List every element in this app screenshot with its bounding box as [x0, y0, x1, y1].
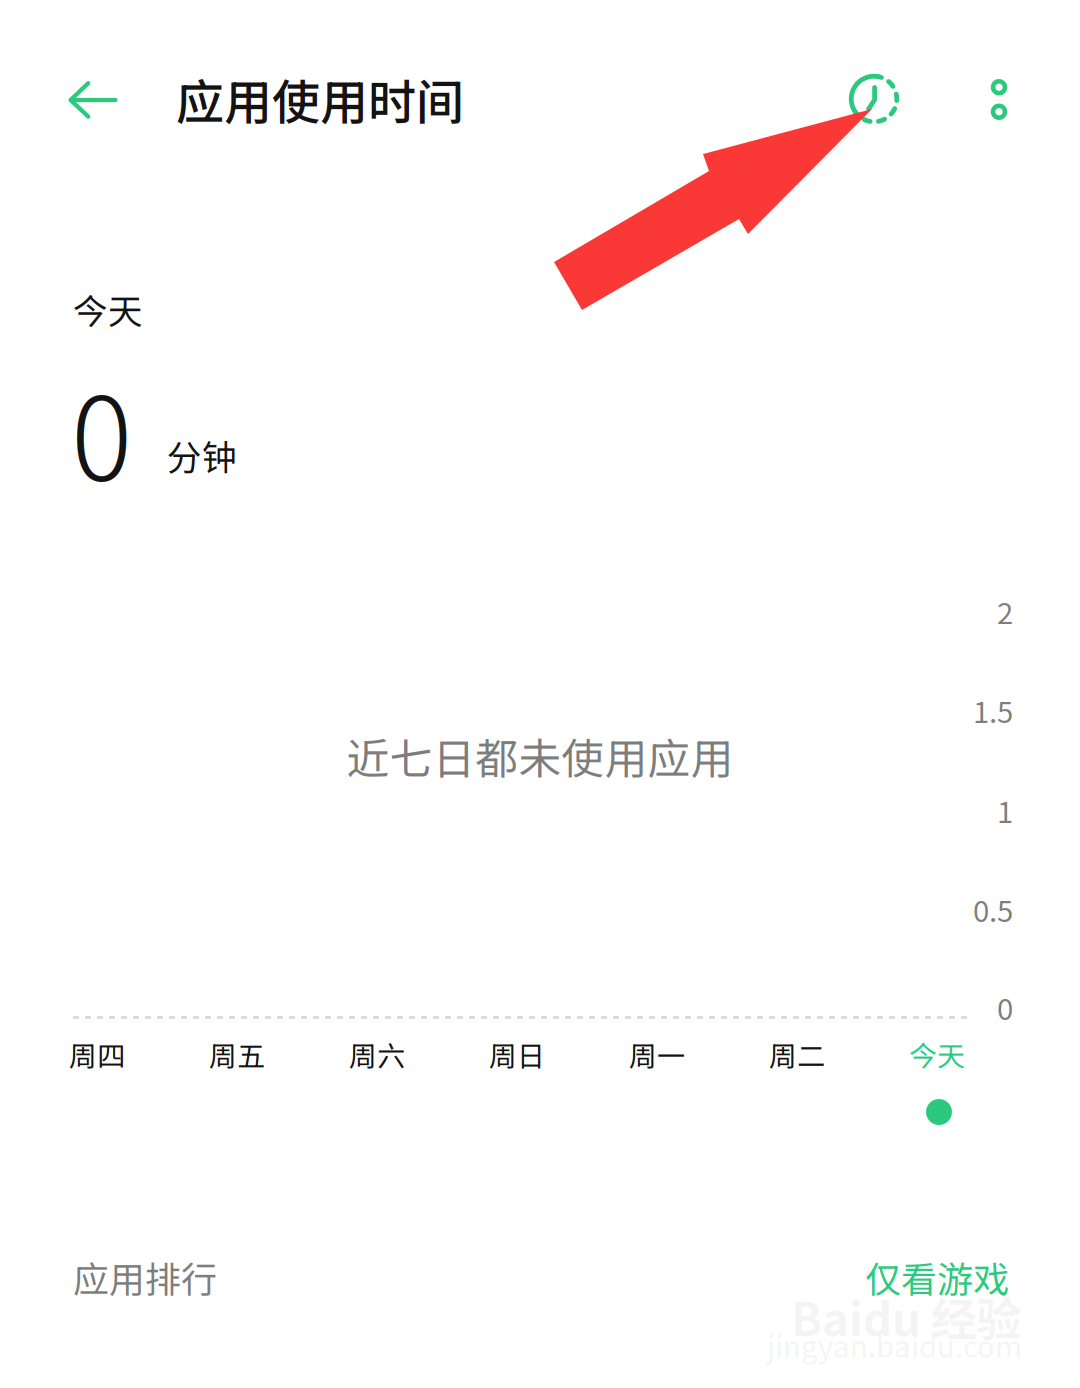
- staticText: 0.5: [973, 888, 1013, 930]
- staticText: 0: [71, 348, 132, 514]
- staticText: Baidu 经验: [791, 1283, 1021, 1349]
- staticText: 今天: [909, 1034, 965, 1074]
- staticText: 1: [997, 789, 1013, 831]
- staticText: 应用使用时间: [176, 64, 464, 133]
- staticText: 周一: [629, 1034, 685, 1074]
- staticText: 周二: [769, 1034, 825, 1074]
- button[interactable]: Back: [34, 45, 152, 155]
- staticText: 0: [997, 986, 1013, 1028]
- staticText: 2: [997, 590, 1013, 632]
- button[interactable]: 应用排行: [73, 1251, 217, 1303]
- staticText: jingyan.baidu.com: [767, 1323, 1022, 1366]
- staticText: 周日: [489, 1034, 545, 1074]
- button[interactable]: More options: [951, 44, 1047, 154]
- staticText: 1.5: [973, 689, 1013, 731]
- staticText: 仅看游戏: [865, 1251, 1009, 1303]
- staticText: 应用排行: [73, 1251, 217, 1303]
- button[interactable]: 仅看游戏: [865, 1251, 1009, 1303]
- staticText: 近七日都未使用应用: [346, 725, 733, 787]
- staticText: 今天: [73, 284, 143, 334]
- staticText: 周四: [69, 1034, 125, 1074]
- button[interactable]: 应用使用时间: [176, 64, 464, 133]
- button[interactable]: Screen time limit: [826, 44, 922, 154]
- staticText: 分钟: [167, 430, 237, 480]
- staticText: 周五: [209, 1034, 265, 1074]
- staticText: 周六: [349, 1034, 405, 1074]
